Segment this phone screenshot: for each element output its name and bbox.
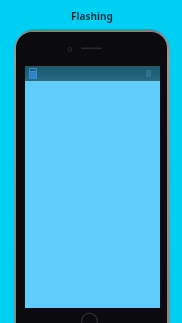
staticText: Flashing — [71, 9, 113, 23]
button[interactable]: More options — [143, 68, 154, 79]
button[interactable]: Calculator — [26, 67, 39, 80]
